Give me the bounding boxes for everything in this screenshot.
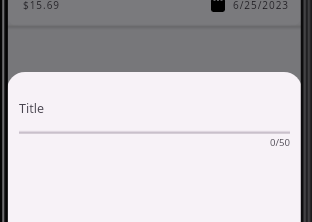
staticText: $15.69 [23, 0, 60, 12]
staticText: Title [19, 100, 44, 117]
staticText: 6/25/2023 [233, 0, 290, 12]
other: Date [211, 0, 225, 12]
button[interactable]: $15.69 [7, 0, 302, 26]
staticText: 0/50 [270, 136, 291, 149]
